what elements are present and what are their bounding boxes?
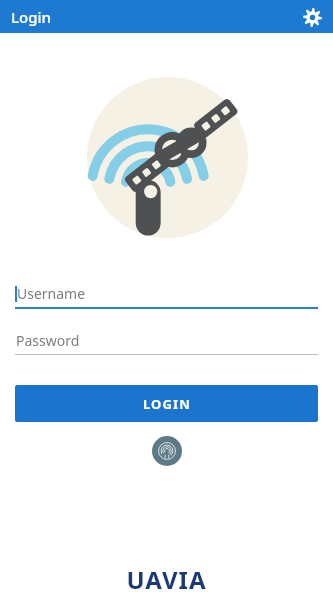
button[interactable]: Settings [299,4,325,30]
staticText: Username [17,284,86,303]
staticText: Password [16,331,80,350]
button[interactable]: Username [15,284,318,309]
staticText: UAVIA [0,563,333,592]
staticText: LOGIN [143,395,191,413]
button[interactable]: Password [15,331,318,355]
staticText: Login [11,7,51,27]
button[interactable]: LOGIN [15,385,318,422]
button[interactable]: Login with fingerprint [152,436,182,466]
